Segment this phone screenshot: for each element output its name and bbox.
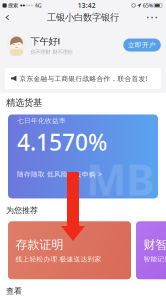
staticText: 为您推荐: [6, 205, 38, 215]
button[interactable]: 返回: [0, 11, 19, 24]
staticText: 去申购 >: [75, 170, 102, 179]
staticText: 4G: [35, 2, 42, 9]
staticText: 你不理财 财不理你: [30, 49, 72, 55]
staticText: 工银小白数字银行: [47, 12, 119, 23]
staticText: 13:42: [78, 1, 96, 10]
staticText: 存款证明: [15, 237, 63, 252]
staticText: 线上轻松办理 极速送达到家: [15, 255, 101, 263]
button[interactable]: 立即开户: [123, 38, 161, 51]
button[interactable]: 京东金融与工商银行战略合作，联合首发!: [5, 68, 161, 89]
staticText: 下午好!: [30, 35, 60, 47]
button[interactable]: 更多: [147, 11, 166, 24]
staticText: 65%: [143, 2, 153, 9]
staticText: 智能记账: [143, 255, 166, 263]
staticText: 4.1570%: [17, 127, 107, 157]
staticText: 精选货基: [6, 97, 42, 108]
staticText: 七日年化收益率: [17, 117, 66, 125]
staticText: 京东金融与工商银行战略合作，联合首发!: [20, 74, 148, 83]
staticText: 查看: [6, 286, 22, 296]
staticText: MB: [86, 151, 154, 207]
staticText: 立即开户: [128, 41, 156, 49]
button[interactable]: MB: [8, 114, 158, 198]
staticText: 财智: [143, 237, 166, 252]
button[interactable]: 财智: [136, 221, 166, 279]
staticText: 随存随取 低风险: [17, 170, 68, 178]
button[interactable]: 存款证明: [8, 221, 131, 279]
staticText: 搜索: [8, 2, 18, 9]
